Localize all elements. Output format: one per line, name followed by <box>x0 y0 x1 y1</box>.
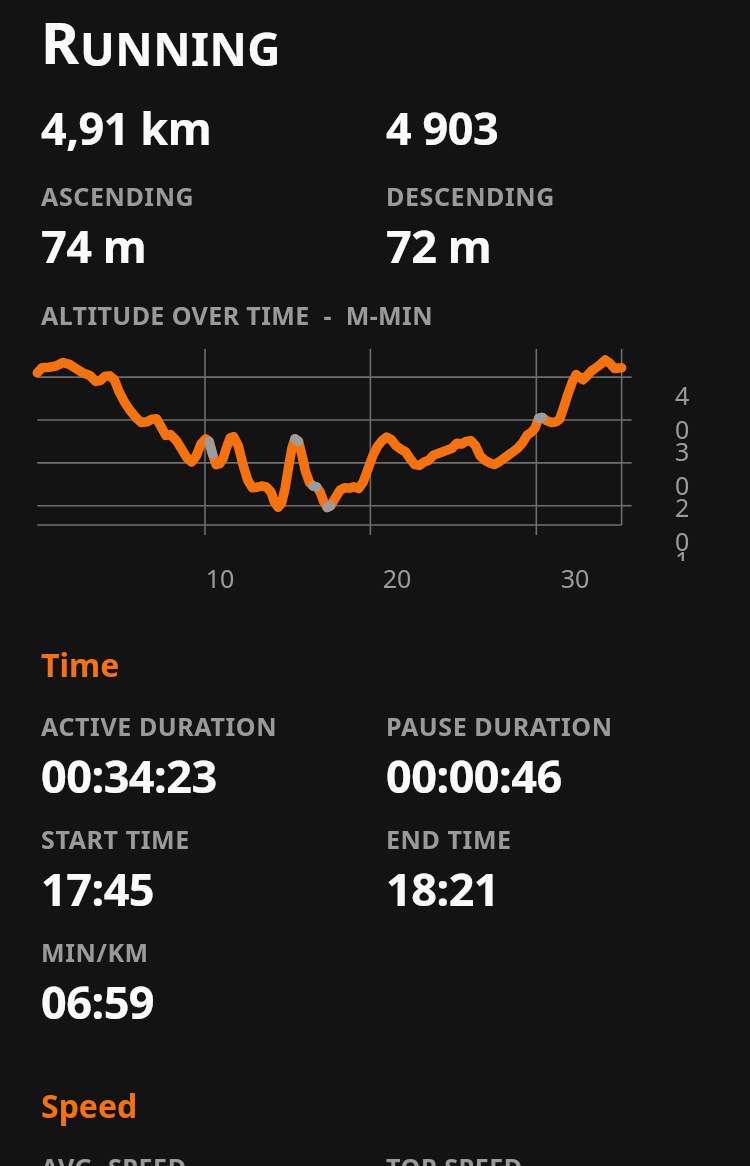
staticText: PAUSE DURATION <box>386 709 613 743</box>
staticText: 74 m <box>41 215 147 276</box>
staticText: DESCENDING <box>386 179 555 213</box>
button[interactable]: Altitude over time chart <box>0 345 699 595</box>
button[interactable]: Speed <box>41 1084 138 1128</box>
staticText: 20 <box>372 561 422 595</box>
staticText: 30 <box>550 561 600 595</box>
staticText: MIN/KM <box>41 935 149 969</box>
button[interactable]: R <box>41 2 282 81</box>
staticText: 72 m <box>386 215 492 276</box>
staticText: 30 <box>675 434 699 502</box>
staticText: 17:45 <box>41 858 155 919</box>
staticText: AVG. SPEED <box>41 1150 187 1166</box>
staticText: 00:00:46 <box>386 745 562 806</box>
staticText: 18:21 <box>386 858 500 919</box>
staticText: ASCENDING <box>41 179 195 213</box>
staticText: 00:34:23 <box>41 745 217 806</box>
staticText: TOP SPEED <box>386 1150 523 1166</box>
staticText: 10 <box>195 561 245 595</box>
staticText: 4 903 <box>386 97 499 158</box>
staticText: ALTITUDE OVER TIME - M-MIN <box>41 298 433 332</box>
staticText: UNNING <box>80 17 282 80</box>
staticText: START TIME <box>41 822 190 856</box>
staticText: 06:59 <box>41 971 155 1032</box>
staticText: 4,91 km <box>41 97 212 158</box>
staticText: 10 <box>675 543 699 561</box>
staticText: END TIME <box>386 822 512 856</box>
staticText: ACTIVE DURATION <box>41 709 278 743</box>
staticText: 40 <box>675 378 699 446</box>
button[interactable]: Time <box>41 643 120 687</box>
staticText: 20 <box>675 490 699 558</box>
staticText: R <box>41 2 80 81</box>
